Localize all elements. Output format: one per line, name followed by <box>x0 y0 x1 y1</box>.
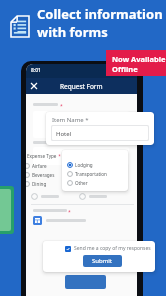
staticText: Hotel <box>56 130 72 138</box>
button[interactable]: Other <box>67 178 88 187</box>
staticText: Airfare <box>32 163 47 169</box>
staticText: Item Name * <box>52 116 89 124</box>
button[interactable]: Now Available <box>106 50 166 76</box>
button[interactable]: Attachment <box>33 216 42 225</box>
staticText: Beverages <box>32 172 55 178</box>
staticText: Lodging <box>75 162 93 168</box>
button[interactable]: Other <box>67 179 88 188</box>
button[interactable]: Lodging <box>67 161 93 170</box>
staticText: 8:01 <box>31 67 41 74</box>
button[interactable]: Dining <box>26 179 47 188</box>
staticText: * <box>68 209 71 216</box>
button[interactable]: Item Name * <box>46 112 154 145</box>
button[interactable]: Submit <box>83 255 122 267</box>
staticText: * <box>60 103 63 110</box>
button[interactable] <box>65 275 106 289</box>
button[interactable]: Airfare <box>26 161 47 170</box>
button[interactable]: Close <box>29 81 39 91</box>
staticText: Offline <box>112 64 138 74</box>
staticText: Expense Type <box>27 153 57 159</box>
staticText: Send me a copy of my responses <box>74 245 151 252</box>
staticText: Lodging <box>75 163 93 169</box>
staticText: Transportation <box>75 172 107 178</box>
button[interactable] <box>65 246 71 252</box>
staticText: Dining <box>32 181 47 187</box>
button[interactable]: Lodging <box>62 150 128 191</box>
staticText: * <box>57 153 61 159</box>
staticText: Submit <box>92 257 113 265</box>
staticText: Request Form <box>60 82 103 91</box>
staticText: Now Available <box>112 54 166 64</box>
staticText: Other <box>75 181 88 187</box>
button[interactable]: Transportation <box>67 169 107 178</box>
button[interactable]: Transportation <box>67 170 107 179</box>
staticText: with forms <box>37 23 108 41</box>
staticText: Transportation <box>75 171 107 177</box>
button[interactable]: Beverages <box>26 170 55 179</box>
staticText: Collect information <box>37 5 163 23</box>
staticText: Other <box>75 180 88 186</box>
button[interactable]: Lodging <box>67 160 93 169</box>
